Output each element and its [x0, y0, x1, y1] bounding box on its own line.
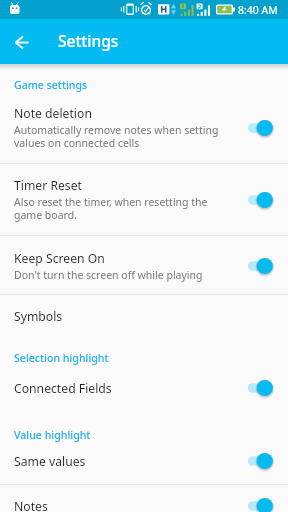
staticText: Symbols — [14, 308, 63, 325]
staticText: Don't turn the screen off while playing — [14, 268, 203, 282]
button[interactable]: Back — [0, 20, 44, 64]
button[interactable]: Symbols — [0, 295, 288, 325]
staticText: Timer Reset — [14, 177, 82, 194]
button[interactable]: Toggle — [248, 452, 274, 470]
staticText: Value highlight — [14, 428, 91, 442]
button[interactable]: Toggle — [248, 191, 274, 209]
staticText: Automatically remove notes when setting … — [14, 123, 219, 150]
staticText: Game settings — [14, 78, 88, 92]
staticText: Connected Fields — [14, 380, 112, 397]
button[interactable]: Notes — [0, 485, 288, 512]
button[interactable]: Connected Fields — [0, 365, 288, 397]
staticText: Note deletion — [14, 105, 92, 122]
staticText: 8:40 AM — [238, 3, 278, 17]
button[interactable]: Toggle — [248, 119, 274, 137]
button[interactable]: Timer Reset — [0, 164, 288, 235]
staticText: Notes — [14, 498, 48, 512]
staticText: Keep Screen On — [14, 250, 105, 267]
button[interactable]: Toggle — [248, 379, 274, 397]
button[interactable]: Note deletion — [0, 92, 288, 163]
button[interactable]: Toggle — [248, 497, 274, 512]
button[interactable]: Toggle — [248, 257, 274, 275]
staticText: Selection highlight — [14, 351, 109, 365]
staticText: Settings — [58, 30, 119, 51]
button[interactable]: Same values — [0, 442, 288, 484]
staticText: Also reset the timer, when resetting the… — [14, 195, 208, 222]
button[interactable]: Keep Screen On — [0, 236, 288, 294]
staticText: Same values — [14, 453, 86, 470]
